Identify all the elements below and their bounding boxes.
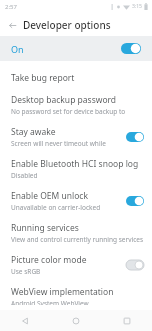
button[interactable]: Toggle on bbox=[126, 196, 144, 206]
staticText: Desktop backup password bbox=[11, 94, 117, 106]
staticText: Enable OEM unlock bbox=[11, 190, 88, 202]
staticText: Enable Bluetooth HCI snoop log bbox=[11, 158, 139, 170]
staticText: Disabled bbox=[11, 171, 38, 180]
button[interactable]: On bbox=[0, 36, 152, 61]
button[interactable]: Toggle on bbox=[121, 43, 141, 54]
staticText: Running services bbox=[11, 222, 79, 234]
button[interactable]: Take bug report bbox=[0, 67, 152, 89]
staticText: Developer options bbox=[23, 18, 111, 32]
staticText: Stay awake bbox=[11, 126, 56, 138]
button[interactable]: Recents bbox=[101, 310, 152, 331]
button[interactable]: Stay awake bbox=[0, 121, 152, 153]
button[interactable]: Toggle off bbox=[126, 260, 144, 270]
staticText: No password set for device backup to des… bbox=[11, 107, 144, 116]
button[interactable]: Back bbox=[0, 310, 50, 331]
staticText: Use sRGB bbox=[11, 267, 41, 276]
button[interactable]: Home bbox=[50, 310, 101, 331]
button[interactable]: WebView implementation bbox=[0, 281, 152, 310]
button[interactable]: Running services bbox=[0, 217, 152, 249]
button[interactable]: Toggle on bbox=[126, 132, 144, 142]
staticText: Screen will never timeout while charging bbox=[11, 139, 122, 148]
staticText: Unavailable on carrier-locked devices bbox=[11, 203, 122, 212]
staticText: 3:15 bbox=[132, 3, 142, 10]
button[interactable]: Enable Bluetooth HCI snoop log bbox=[0, 153, 152, 185]
button[interactable]: Back bbox=[4, 17, 20, 33]
staticText: View and control currently running servi… bbox=[11, 235, 144, 244]
staticText: Picture color mode bbox=[11, 254, 87, 266]
staticText: WebView implementation bbox=[11, 286, 114, 298]
staticText: Android System WebView bbox=[11, 299, 89, 305]
button[interactable]: Picture color mode bbox=[0, 249, 152, 281]
button[interactable]: Enable OEM unlock bbox=[0, 185, 152, 217]
staticText: On bbox=[11, 43, 24, 55]
staticText: 2:57 bbox=[5, 3, 17, 11]
button[interactable]: Desktop backup password bbox=[0, 89, 152, 121]
staticText: Take bug report bbox=[11, 72, 75, 84]
